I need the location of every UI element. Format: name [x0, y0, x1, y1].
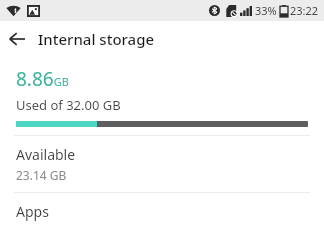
- button[interactable]: Apps: [0, 193, 324, 235]
- button[interactable]: 8.86GB: [0, 56, 324, 135]
- staticText: 8.86GB: [16, 66, 69, 92]
- staticText: Apps: [16, 202, 49, 221]
- staticText: 23:22: [290, 3, 319, 18]
- staticText: 33%: [255, 3, 277, 18]
- button[interactable]: Back: [0, 22, 34, 56]
- button[interactable]: Available: [0, 136, 324, 192]
- staticText: 23.14 GB: [16, 167, 67, 183]
- staticText: Available: [16, 145, 76, 164]
- staticText: Used of 32.00 GB: [16, 96, 121, 114]
- staticText: Internal storage: [38, 29, 155, 49]
